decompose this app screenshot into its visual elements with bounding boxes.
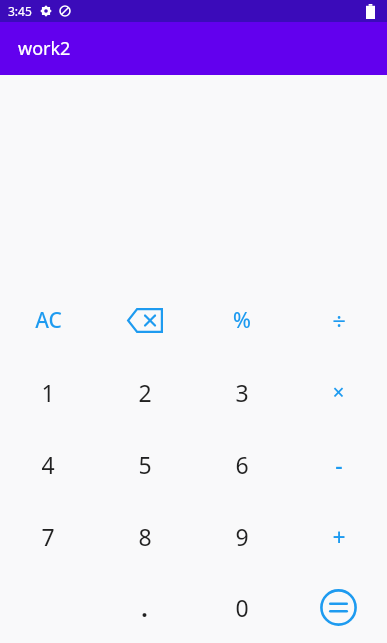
staticText: + [332,521,346,552]
button[interactable]: 2 [96,356,193,428]
button[interactable]: ÷ [290,284,387,356]
button[interactable]: × [290,356,387,428]
button[interactable]: 1 [0,356,96,428]
staticText: - [335,449,343,480]
button[interactable]: Backspace [96,284,193,356]
staticText: . [141,592,148,623]
button[interactable]: - [290,428,387,500]
button[interactable]: % [193,284,290,356]
staticText: 1 [41,377,55,408]
staticText: 9 [235,521,249,552]
button[interactable]: 8 [96,500,193,572]
button[interactable]: + [290,500,387,572]
button[interactable]: 6 [193,428,290,500]
staticText: AC [35,306,62,335]
button[interactable]: 7 [0,500,96,572]
button[interactable]: 0 [193,572,290,643]
button[interactable]: 3 [193,356,290,428]
button[interactable]: . [96,572,193,643]
staticText: ÷ [332,304,346,337]
staticText: work2 [18,36,71,61]
staticText: % [233,306,251,335]
staticText: 3:45 [8,3,32,19]
button[interactable]: 4 [0,428,96,500]
button[interactable]: 9 [193,500,290,572]
staticText: 3 [235,377,249,408]
staticText: 4 [41,449,55,480]
staticText: 6 [235,449,249,480]
staticText: 8 [138,521,152,552]
staticText: × [332,378,345,407]
button[interactable]: 5 [96,428,193,500]
staticText: 7 [41,521,55,552]
staticText: 5 [138,449,152,480]
button[interactable]: Equals [290,572,387,643]
button[interactable]: AC [0,284,96,356]
staticText: 0 [235,592,249,623]
staticText: 2 [138,377,152,408]
